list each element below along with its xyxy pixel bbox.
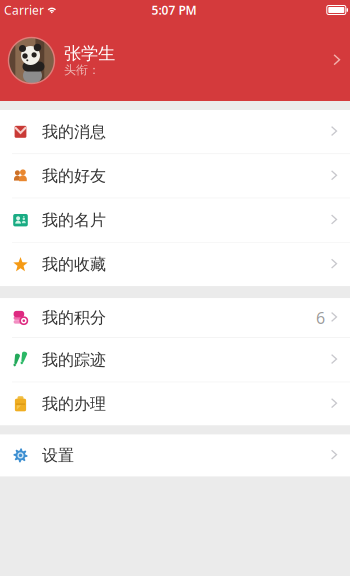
staticText: Carrier bbox=[4, 2, 44, 18]
staticText: 设置 bbox=[42, 446, 74, 465]
staticText: 头衔： bbox=[64, 63, 100, 77]
staticText: 我的收藏 bbox=[42, 255, 106, 274]
button[interactable]: 设置 bbox=[0, 434, 350, 476]
button[interactable]: 我的办理 bbox=[0, 382, 350, 425]
button[interactable]: 我的积分 bbox=[0, 298, 350, 337]
staticText: 我的名片 bbox=[42, 210, 106, 230]
staticText: 6 bbox=[316, 307, 325, 328]
button[interactable]: 我的收藏 bbox=[0, 243, 350, 286]
staticText: 5:07 PM bbox=[151, 2, 196, 18]
button[interactable]: 我的消息 bbox=[0, 110, 350, 154]
staticText: 我的积分 bbox=[42, 308, 106, 328]
button[interactable]: 我的踪迹 bbox=[0, 338, 350, 382]
staticText: 我的办理 bbox=[42, 394, 106, 414]
button[interactable]: 我的名片 bbox=[0, 198, 350, 242]
staticText: 我的好友 bbox=[42, 166, 106, 186]
staticText: 我的踪迹 bbox=[42, 350, 106, 370]
staticText: 张学生 bbox=[64, 43, 115, 64]
button[interactable]: 我的好友 bbox=[0, 154, 350, 198]
button[interactable]: 张学生 bbox=[0, 29, 350, 91]
staticText: 我的消息 bbox=[42, 122, 106, 142]
